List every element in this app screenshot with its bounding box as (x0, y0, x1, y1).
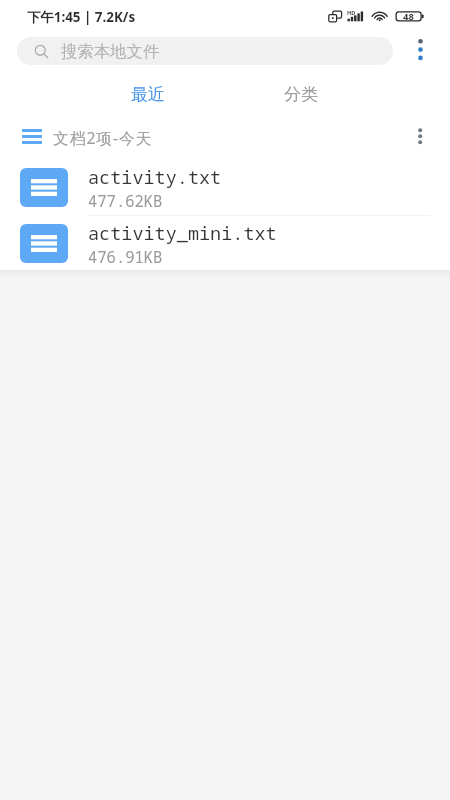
button[interactable]: 分类 (224, 71, 378, 118)
button[interactable]: More options (404, 33, 438, 68)
button[interactable]: 最近 (71, 71, 224, 118)
button[interactable]: activity.txt (0, 158, 450, 216)
button[interactable]: Sort options (412, 118, 450, 158)
staticText: 下午1:45 | 7.2K/s (27, 8, 136, 26)
staticText: 48 (403, 10, 414, 23)
staticText: activity.txt (88, 164, 222, 189)
staticText: 搜索本地文件 (61, 41, 160, 62)
staticText: 分类 (284, 84, 318, 105)
button[interactable]: 搜索本地文件 (17, 37, 393, 65)
staticText: activity_mini.txt (88, 220, 277, 245)
button[interactable]: activity_mini.txt (0, 216, 450, 270)
staticText: 476.91KB (88, 246, 163, 267)
staticText: 477.62KB (88, 190, 163, 211)
staticText: 文档2项-今天 (53, 127, 153, 149)
staticText: HD (347, 9, 356, 17)
staticText: 最近 (131, 84, 165, 105)
